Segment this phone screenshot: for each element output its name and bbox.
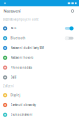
staticText: Nastavení <box>3 8 20 14</box>
staticText: Displej <box>10 93 20 97</box>
button[interactable]: Search <box>68 6 76 15</box>
button[interactable]: Bluetooth <box>0 33 79 43</box>
button[interactable]: Zamknutí obrazovky <box>0 100 79 110</box>
button[interactable]: Nastavení duální karty SIM <box>0 43 79 53</box>
staticText: Bezdrátová připojení a sítě <box>3 18 39 21</box>
button[interactable]: Displej <box>0 90 79 100</box>
staticText: Zařízení <box>3 84 14 88</box>
staticText: Bluetooth <box>10 36 25 40</box>
staticText: Přenesená data <box>10 66 31 69</box>
button[interactable]: Wi-Fi <box>0 23 79 33</box>
button[interactable]: Přenesená data <box>0 63 79 72</box>
button[interactable]: Zvuk a oznámení <box>0 110 79 120</box>
staticText: Nastavení hovorů <box>10 56 33 59</box>
staticText: Zamknutí obrazovky <box>10 103 35 107</box>
staticText: Zvuk a oznámení <box>10 113 32 116</box>
button[interactable]: Nastavení hovorů <box>0 53 79 63</box>
staticText: Wi-Fi <box>10 27 16 30</box>
staticText: Další <box>10 76 16 79</box>
staticText: Nastavení duální karty SIM <box>10 46 43 50</box>
button[interactable]: Další <box>0 72 79 82</box>
